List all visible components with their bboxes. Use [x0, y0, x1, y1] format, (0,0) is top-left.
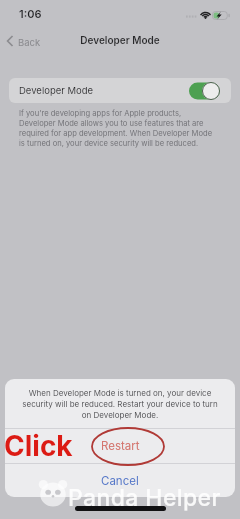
button[interactable]: Back: [3, 33, 43, 49]
staticText: Back: [18, 37, 41, 48]
staticText: Developer Mode: [19, 85, 94, 96]
staticText: Click: [4, 429, 73, 463]
button[interactable]: Restart: [5, 429, 235, 463]
staticText: Developer Mode: [0, 34, 240, 46]
staticText: Restart: [101, 439, 140, 453]
button[interactable]: Developer Mode: [9, 78, 231, 103]
staticText: Panda Helper: [68, 484, 221, 512]
staticText: When Developer Mode is turned on, your d…: [5, 388, 235, 420]
staticText: 1:06: [19, 7, 42, 20]
button[interactable]: Cancel: [5, 464, 235, 497]
staticText: Cancel: [101, 474, 139, 488]
staticText: If you're developing apps for Apple prod…: [19, 109, 213, 148]
